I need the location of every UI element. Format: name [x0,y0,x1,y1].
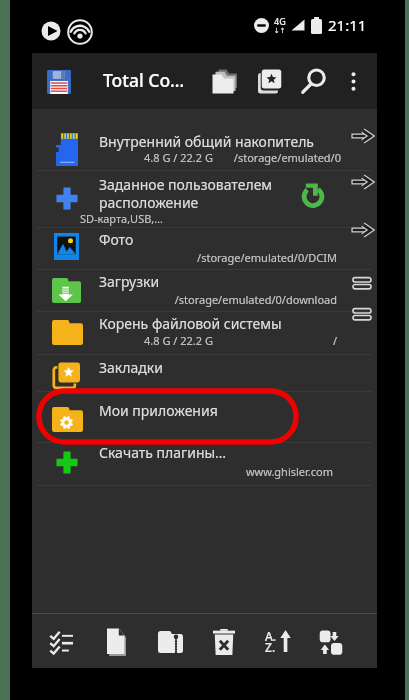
staticText: Заданное пользователем [99,175,273,194]
button[interactable]: Внутренний общий накопитель [32,109,377,170]
staticText: Z. [265,639,276,655]
staticText: ↓↑ [274,27,286,35]
staticText: /storage/emulated/0/DCIM [197,250,337,265]
staticText: Закладки [99,358,163,377]
button[interactable]: Delete [198,614,250,668]
button[interactable]: Заданное пользователем [32,170,377,227]
button[interactable]: Move [305,614,357,668]
staticText: Корень файловой системы [99,314,282,333]
staticText: 4G [274,15,286,27]
staticText: /storage/emulated/0 [233,150,341,165]
staticText: расположение [99,193,199,212]
staticText: Total Co… [103,68,185,92]
button[interactable]: More options [333,53,373,109]
button[interactable]: Фото [32,227,377,269]
staticText: A. [265,628,277,644]
button[interactable]: Total Co… [90,53,190,109]
staticText: Фото [99,230,134,249]
button[interactable]: Корень файловой системы [32,311,377,354]
button[interactable]: Folders [202,53,246,109]
button[interactable]: Select [35,614,87,668]
staticText: 21:11 [328,15,367,35]
staticText: SD-карта,USB,… [80,211,163,226]
button[interactable]: Bookmarks [248,53,292,109]
staticText: www.ghisler.com [245,464,333,479]
button[interactable]: Search [291,53,335,109]
staticText: 4.8 G / 22.2 G [144,150,213,165]
button[interactable]: Закладки [32,354,377,391]
button[interactable]: Мои приложения [32,391,377,442]
button[interactable]: Sort [252,614,304,668]
staticText: 4.8 G / 22.2 G [144,333,213,348]
button[interactable]: New file [90,614,142,668]
staticText: / [332,333,337,348]
button[interactable]: Скачать плагины… [32,442,377,485]
staticText: Внутренний общий накопитель [99,132,314,151]
button[interactable]: Compress [144,614,196,668]
staticText: Мои приложения [99,401,218,420]
staticText: /storage/emulated/0/download [174,292,337,307]
staticText: Загрузки [99,272,160,291]
button[interactable]: Загрузки [32,269,377,311]
staticText: Скачать плагины… [99,443,227,462]
